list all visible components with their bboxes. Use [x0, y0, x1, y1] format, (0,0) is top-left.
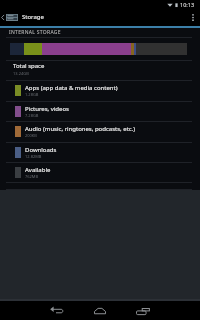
- button[interactable]: Available: [0, 162, 200, 182]
- staticText: 10:13: [180, 1, 195, 8]
- button[interactable]: Navigate up: [0, 9, 22, 26]
- staticText: Audio (music, ringtones, podcasts, etc.): [25, 125, 195, 133]
- staticText: 762MB: [25, 174, 39, 179]
- staticText: Available: [25, 166, 195, 174]
- staticText: 12.82MB: [25, 154, 42, 159]
- button[interactable]: Total space: [0, 60, 200, 80]
- button[interactable]: Apps (app data & media content): [0, 80, 200, 100]
- staticText: Pictures, videos: [25, 105, 195, 113]
- button[interactable]: Pictures, videos: [0, 101, 200, 121]
- staticText: Total space: [13, 62, 45, 70]
- staticText: Downloads: [25, 146, 195, 154]
- staticText: Storage: [22, 13, 44, 21]
- staticText: Apps (app data & media content): [25, 84, 195, 92]
- button[interactable]: Recent apps: [124, 301, 161, 319]
- other: Navigate up: [1, 15, 4, 20]
- staticText: 7.28GB: [25, 113, 39, 118]
- staticText: 200KB: [25, 133, 37, 138]
- staticText: 1.28GB: [25, 92, 39, 97]
- button[interactable]: Audio (music, ringtones, podcasts, etc.): [0, 121, 200, 141]
- button[interactable]: Back: [38, 301, 75, 319]
- button[interactable]: Home: [81, 301, 118, 319]
- button[interactable]: Downloads: [0, 142, 200, 162]
- button[interactable]: More options: [186, 9, 200, 26]
- staticText: INTERNAL STORAGE: [9, 29, 61, 36]
- staticText: 13.24GB: [13, 71, 29, 76]
